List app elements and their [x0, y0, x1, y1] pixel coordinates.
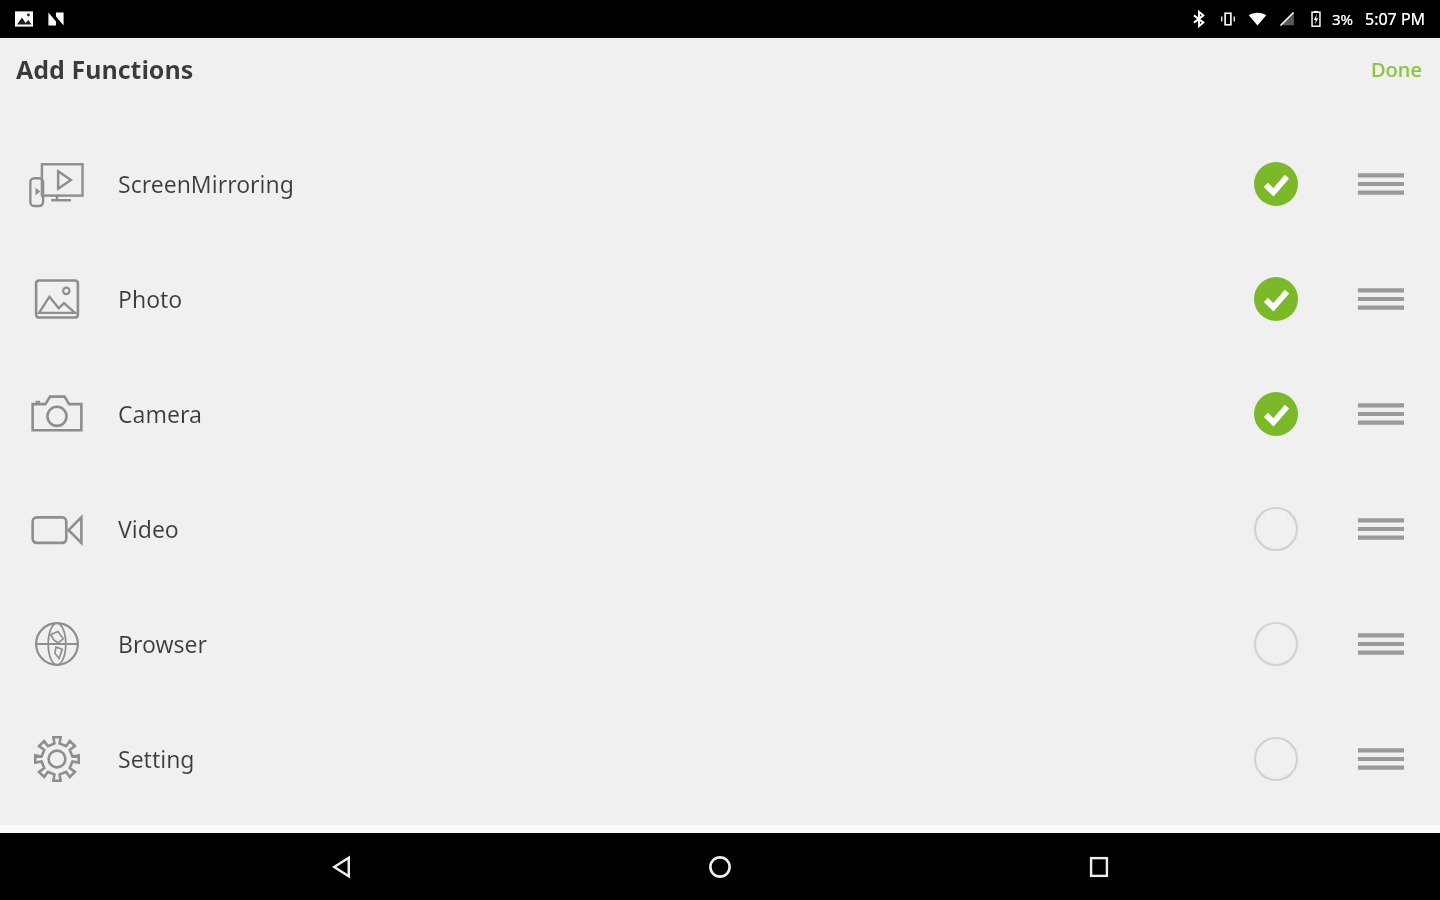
button[interactable]: Back [305, 833, 379, 900]
button[interactable]: Reorder ScreenMirroring [1352, 155, 1410, 213]
staticText: 5:07 PM [1365, 8, 1426, 30]
staticText: Video [118, 513, 179, 544]
button[interactable]: Reorder Photo [1352, 270, 1410, 328]
button[interactable]: Reorder Setting [1352, 730, 1410, 788]
button[interactable]: ScreenMirroring [0, 126, 1440, 241]
staticText: Done [1371, 56, 1422, 83]
button[interactable]: Camera [0, 356, 1440, 471]
staticText: Photo [118, 283, 183, 314]
button[interactable]: Not selected [1244, 612, 1308, 676]
button[interactable]: Not selected [1244, 497, 1308, 561]
button[interactable]: Selected [1244, 152, 1308, 216]
staticText: Browser [118, 628, 208, 659]
button[interactable]: Not selected [1244, 727, 1308, 791]
button[interactable]: Selected [1244, 267, 1308, 331]
button[interactable]: Reorder Video [1352, 500, 1410, 558]
staticText: ScreenMirroring [118, 168, 294, 199]
button[interactable]: Photo [0, 241, 1440, 356]
staticText: Add Functions [16, 52, 194, 86]
button[interactable]: Home [683, 833, 757, 900]
button[interactable]: Setting [0, 701, 1440, 816]
button[interactable]: Reorder Camera [1352, 385, 1410, 443]
staticText: 3% [1332, 9, 1354, 29]
button[interactable]: Selected [1244, 382, 1308, 446]
button[interactable]: Browser [0, 586, 1440, 701]
button[interactable]: Video [0, 471, 1440, 586]
staticText: Setting [118, 743, 195, 774]
button[interactable]: Done [1353, 46, 1440, 93]
button[interactable]: Recent apps [1062, 833, 1136, 900]
button[interactable]: Reorder Browser [1352, 615, 1410, 673]
staticText: Camera [118, 398, 202, 429]
